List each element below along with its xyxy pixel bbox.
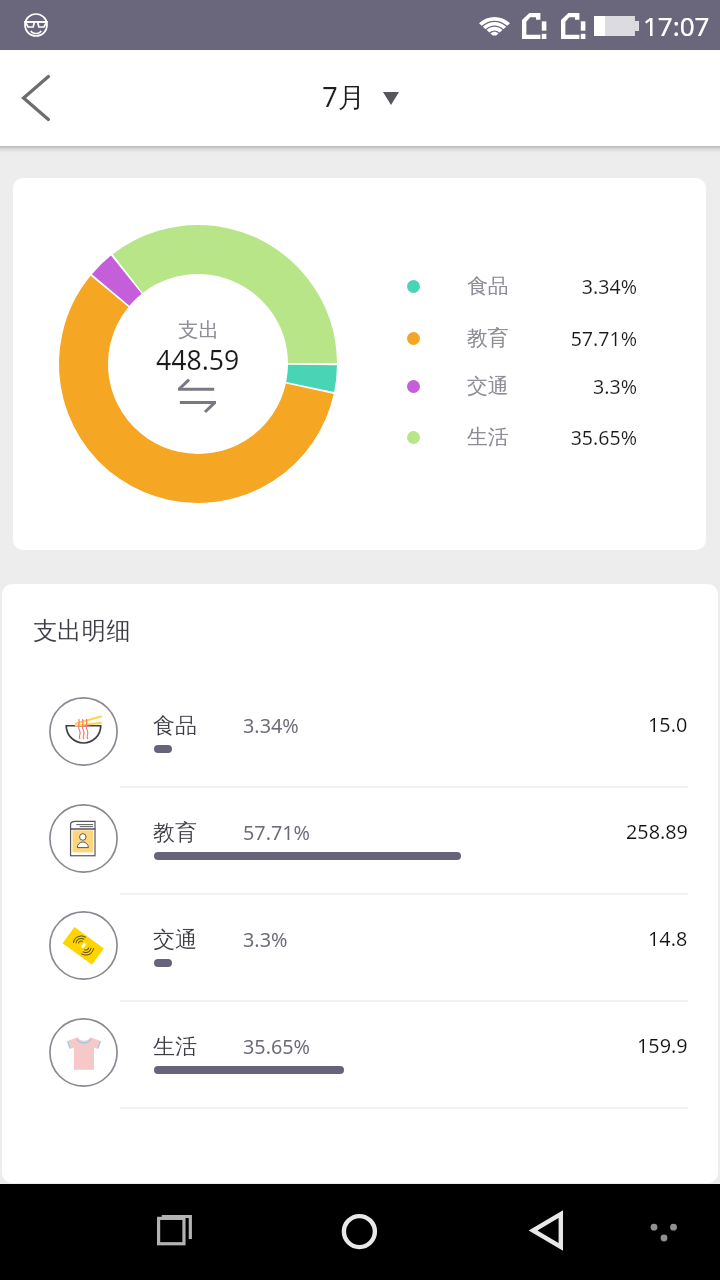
button[interactable]: 生活: [407, 411, 637, 463]
staticText: 57.71%: [243, 819, 311, 846]
staticText: 3.3%: [243, 926, 288, 953]
staticText: 258.89: [626, 818, 688, 845]
button[interactable]: 教育: [407, 312, 637, 364]
staticText: 生活: [153, 1033, 197, 1061]
button[interactable]: More options: [638, 1184, 720, 1280]
staticText: 57.71%: [570, 325, 637, 352]
button[interactable]: Recents: [120, 1184, 216, 1280]
button[interactable]: Home: [312, 1184, 408, 1280]
button[interactable]: 7月: [322, 79, 399, 117]
staticText: 15.0: [648, 711, 688, 738]
button[interactable]: 食品: [407, 260, 637, 312]
staticText: 支出: [178, 317, 219, 343]
button[interactable]: 交通: [2, 902, 718, 1000]
staticText: 教育: [467, 325, 509, 351]
staticText: 3.34%: [243, 712, 299, 739]
button[interactable]: 教育: [2, 795, 718, 893]
button[interactable]: 食品: [2, 688, 718, 786]
staticText: 交通: [153, 926, 197, 954]
button[interactable]: Back: [0, 50, 72, 146]
button[interactable]: 交通: [407, 360, 637, 412]
staticText: 7月: [322, 77, 366, 115]
staticText: 教育: [153, 819, 197, 847]
staticText: 生活: [467, 424, 509, 450]
staticText: 159.9: [637, 1032, 688, 1059]
staticText: 支出明细: [33, 616, 131, 647]
staticText: 17:07: [643, 8, 710, 43]
button[interactable]: Back: [505, 1184, 601, 1280]
staticText: 448.59: [156, 342, 240, 378]
staticText: 食品: [467, 273, 509, 299]
staticText: 3.34%: [581, 273, 637, 300]
staticText: 3.3%: [593, 373, 637, 400]
staticText: 交通: [467, 373, 509, 399]
staticText: 35.65%: [570, 424, 637, 451]
staticText: 食品: [153, 712, 197, 740]
button[interactable]: 生活: [2, 1009, 718, 1107]
staticText: 14.8: [648, 925, 688, 952]
staticText: 35.65%: [243, 1033, 311, 1060]
